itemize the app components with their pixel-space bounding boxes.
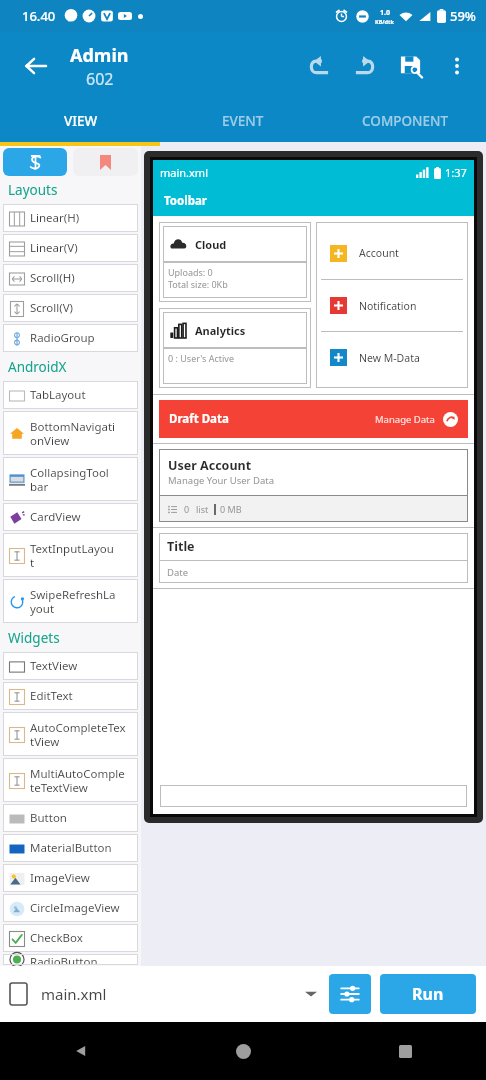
button[interactable]: AutoCompleteTex tView [3, 712, 138, 756]
staticText: SwipeRefreshLa yout [30, 587, 116, 616]
staticText: CollapsingTool bar [30, 465, 109, 494]
button[interactable]: Redo [342, 43, 388, 89]
button[interactable]: EVENT [162, 100, 324, 142]
staticText: 602 [86, 68, 114, 90]
button[interactable]: Account [321, 227, 463, 279]
staticText: CardView [30, 509, 81, 525]
button[interactable]: RadioGroup [3, 324, 138, 352]
button[interactable]: Bookmarks [73, 148, 138, 176]
staticText: main.xml [160, 165, 208, 180]
staticText: EVENT [222, 112, 264, 130]
staticText: Manage Data [375, 413, 435, 426]
staticText: TextInputLayou t [30, 541, 114, 570]
staticText: Linear(V) [30, 240, 78, 256]
staticText: Date [167, 566, 189, 579]
staticText: Notification [359, 299, 417, 313]
staticText: BottomNavigati onView [30, 419, 116, 448]
button[interactable]: CollapsingTool bar [3, 457, 138, 501]
staticText: 1.0 [380, 8, 390, 18]
staticText: EditText [30, 688, 73, 704]
button[interactable]: Notification [321, 280, 463, 331]
staticText: RadioGroup [30, 330, 95, 346]
button[interactable]: Button [3, 804, 138, 832]
button[interactable]: Undo [296, 43, 342, 89]
staticText: Draft Data [169, 411, 229, 427]
button[interactable]: MultiAutoComple teTextView [3, 758, 138, 802]
button[interactable]: SwipeRefreshLa yout [3, 579, 138, 623]
staticText: New M-Data [359, 351, 420, 365]
button[interactable]: TextView [3, 652, 138, 680]
staticText: Linear(H) [30, 210, 80, 226]
staticText: Admin [70, 43, 129, 68]
staticText: AndroidX [8, 358, 67, 376]
button[interactable]: TextInputLayou t [3, 533, 138, 577]
staticText: VIEW [64, 112, 98, 130]
staticText: main.xml [41, 984, 107, 1004]
staticText: KB/dtk [375, 18, 394, 25]
staticText: Run [412, 983, 444, 1005]
button[interactable]: Home [162, 1022, 324, 1080]
staticText: Cloud [195, 237, 227, 252]
staticText: RadioButton [30, 954, 98, 965]
staticText: 16.40 [22, 7, 56, 25]
staticText: 0 : User's Active [168, 352, 234, 364]
button[interactable]: Views palette [3, 148, 67, 176]
button[interactable]: Settings [329, 974, 371, 1014]
button[interactable]: Back [14, 44, 58, 88]
staticText: AutoCompleteTex tView [30, 720, 126, 749]
button[interactable]: RadioButton [3, 954, 138, 965]
button[interactable]: COMPONENT [324, 100, 486, 142]
button[interactable]: Draft Data [159, 400, 468, 438]
button[interactable]: Save [388, 43, 434, 89]
staticText: Button [30, 810, 67, 826]
staticText: Layouts [8, 181, 58, 199]
button[interactable]: Linear(V) [3, 234, 138, 262]
button[interactable]: New M-Data [321, 332, 463, 383]
button[interactable]: MaterialButton [3, 834, 138, 862]
button[interactable]: ImageView [3, 864, 138, 892]
staticText: Account [359, 246, 399, 260]
button[interactable]: TabLayout [3, 381, 138, 409]
button[interactable]: Back [0, 1022, 162, 1080]
staticText: Toolbar [164, 193, 207, 209]
staticText: 0 [184, 503, 190, 515]
button[interactable]: VIEW [0, 100, 162, 142]
staticText: Manage Your User Data [168, 474, 275, 487]
button[interactable]: main.xml [10, 966, 329, 1022]
staticText: Widgets [8, 629, 60, 647]
staticText: CircleImageView [30, 900, 120, 916]
button[interactable]: Scroll(H) [3, 264, 138, 292]
staticText: list [196, 503, 209, 515]
staticText: Title [167, 538, 195, 555]
staticText: COMPONENT [362, 112, 449, 130]
button[interactable]: CheckBox [3, 924, 138, 952]
staticText: Analytics [195, 323, 246, 338]
button[interactable]: CardView [3, 503, 138, 531]
staticText: MultiAutoComple teTextView [30, 766, 125, 795]
staticText: 1:37 [445, 165, 467, 180]
staticText: MaterialButton [30, 840, 112, 856]
staticText: Total size: 0Kb [168, 278, 228, 290]
staticText: User Account [168, 457, 252, 474]
staticText: 59% [450, 7, 476, 25]
staticText: 0 MB [220, 503, 242, 515]
staticText: Uploads: 0 [168, 266, 213, 278]
button[interactable]: BottomNavigati onView [3, 411, 138, 455]
staticText: TextView [30, 658, 78, 674]
button[interactable]: Scroll(V) [3, 294, 138, 322]
staticText: ImageView [30, 870, 90, 886]
button[interactable]: Run [380, 974, 476, 1014]
button[interactable]: CircleImageView [3, 894, 138, 922]
button[interactable]: EditText [3, 682, 138, 710]
staticText: Scroll(V) [30, 300, 74, 316]
staticText: CheckBox [30, 930, 83, 946]
button[interactable]: More options [434, 43, 480, 89]
button[interactable]: Recent apps [324, 1022, 486, 1080]
button[interactable]: Linear(H) [3, 204, 138, 232]
staticText: TabLayout [30, 387, 86, 403]
staticText: Scroll(H) [30, 270, 75, 286]
